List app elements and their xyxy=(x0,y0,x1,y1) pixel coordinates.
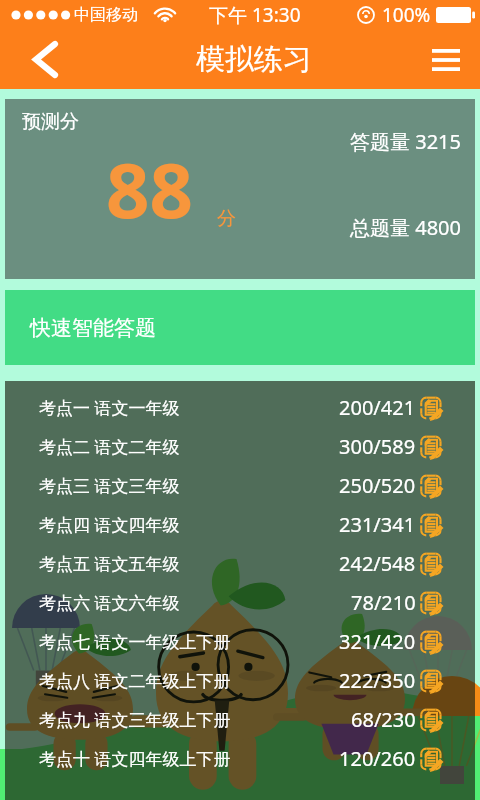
staticText: 88 xyxy=(106,137,193,241)
staticText: 考点二 语文二年级 xyxy=(39,435,180,458)
staticText: 模拟练习 xyxy=(196,41,312,78)
staticText: 100% xyxy=(382,2,431,28)
button[interactable]: 快速智能答题 xyxy=(5,290,475,365)
staticText: 68/230 xyxy=(351,706,416,733)
staticText: 下午 13:30 xyxy=(209,2,301,28)
staticText: 120/260 xyxy=(339,745,416,772)
staticText: 考点七 语文一年级上下册 xyxy=(39,630,231,653)
staticText: 242/548 xyxy=(339,550,416,577)
staticText: 预测分 xyxy=(22,110,79,134)
staticText: 考点四 语文四年级 xyxy=(39,513,180,536)
staticText: 考点一 语文一年级 xyxy=(39,396,180,419)
button[interactable]: 考点十 语文四年级上下册 xyxy=(5,739,475,778)
staticText: 222/350 xyxy=(339,667,416,694)
button[interactable]: 考点八 语文二年级上下册 xyxy=(5,661,475,700)
staticText: 78/210 xyxy=(351,589,416,616)
button[interactable]: 考点一 语文一年级 xyxy=(5,388,475,427)
button[interactable]: Back xyxy=(0,30,90,89)
staticText: 考点三 语文三年级 xyxy=(39,474,180,497)
staticText: 250/520 xyxy=(339,472,416,499)
button[interactable]: 考点三 语文三年级 xyxy=(5,466,475,505)
staticText: 考点六 语文六年级 xyxy=(39,591,180,614)
staticText: 考点五 语文五年级 xyxy=(39,552,180,575)
staticText: 中国移动 xyxy=(74,5,138,25)
staticText: 答题量 3215 xyxy=(350,128,461,155)
staticText: 总题量 4800 xyxy=(350,214,461,241)
staticText: 231/341 xyxy=(339,511,416,538)
staticText: 分 xyxy=(217,207,236,231)
staticText: 300/589 xyxy=(339,433,416,460)
button[interactable]: 预测分 xyxy=(5,99,475,279)
button[interactable]: 考点五 语文五年级 xyxy=(5,544,475,583)
button[interactable]: 考点二 语文二年级 xyxy=(5,427,475,466)
staticText: 快速智能答题 xyxy=(30,315,156,341)
staticText: 321/420 xyxy=(339,628,416,655)
staticText: 考点八 语文二年级上下册 xyxy=(39,669,231,692)
button[interactable]: Menu xyxy=(412,30,480,89)
button[interactable]: 考点四 语文四年级 xyxy=(5,505,475,544)
button[interactable]: 考点六 语文六年级 xyxy=(5,583,475,622)
staticText: 考点九 语文三年级上下册 xyxy=(39,708,231,731)
button[interactable]: 考点九 语文三年级上下册 xyxy=(5,700,475,739)
staticText: 考点十 语文四年级上下册 xyxy=(39,747,231,770)
staticText: 200/421 xyxy=(339,394,416,421)
button[interactable]: 考点七 语文一年级上下册 xyxy=(5,622,475,661)
